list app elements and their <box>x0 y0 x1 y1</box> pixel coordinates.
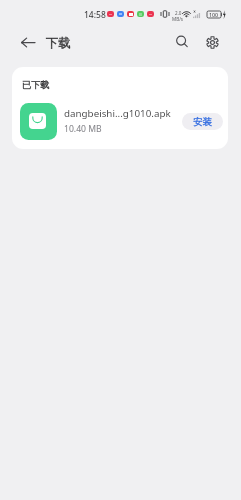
staticText: dangbeishi...g1010.apk <box>64 107 171 120</box>
button[interactable]: 设置 <box>200 30 225 55</box>
button[interactable]: 安装 <box>182 113 223 130</box>
staticText: MB/s <box>172 16 184 22</box>
staticText: 下载 <box>46 35 71 51</box>
staticText: 安装 <box>193 116 212 128</box>
staticText: 下载 <box>46 35 71 51</box>
staticText: 10.40 MB <box>64 123 102 135</box>
staticText: 2.0 <box>175 10 182 16</box>
staticText: 安装 <box>193 116 212 128</box>
staticText: 100 <box>209 11 219 18</box>
button[interactable]: 搜索 <box>169 29 194 54</box>
staticText: 已下载 <box>22 79 50 91</box>
button[interactable]: dangbeishi...g1010.apk <box>12 97 228 142</box>
staticText: 已下载 <box>22 79 50 91</box>
button[interactable]: 返回 <box>14 31 42 53</box>
staticText: 14:58 <box>84 9 106 21</box>
